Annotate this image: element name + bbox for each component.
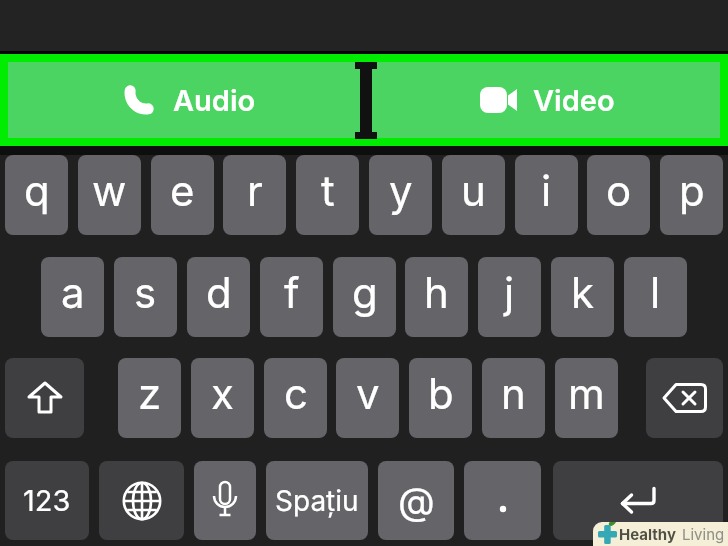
staticText: d bbox=[206, 267, 232, 318]
staticText: x bbox=[211, 368, 234, 419]
staticText: y bbox=[389, 165, 413, 216]
button[interactable]: d bbox=[187, 257, 250, 337]
button[interactable]: m bbox=[555, 358, 618, 438]
button[interactable]: b bbox=[409, 358, 472, 438]
button[interactable]: t bbox=[296, 155, 359, 235]
staticText: m bbox=[568, 368, 605, 419]
staticText: v bbox=[356, 368, 380, 419]
staticText: Spațiu bbox=[275, 484, 359, 518]
staticText: i bbox=[541, 165, 552, 216]
button[interactable]: Video bbox=[368, 62, 720, 138]
button[interactable]: u bbox=[442, 155, 505, 235]
button[interactable]: v bbox=[336, 358, 399, 438]
button[interactable]: w bbox=[78, 155, 141, 235]
staticText: q bbox=[24, 165, 50, 216]
button[interactable] bbox=[464, 461, 541, 540]
staticText: g bbox=[352, 267, 378, 318]
button[interactable]: 123 bbox=[5, 461, 89, 540]
button[interactable]: q bbox=[5, 155, 68, 235]
staticText: t bbox=[321, 165, 335, 216]
button[interactable]: Audio bbox=[8, 62, 360, 138]
staticText: f bbox=[284, 267, 300, 318]
button[interactable]: o bbox=[587, 155, 650, 235]
button[interactable]: Healthy bbox=[593, 522, 728, 546]
button[interactable]: a bbox=[41, 257, 104, 337]
button[interactable]: @ bbox=[378, 461, 454, 540]
staticText: z bbox=[138, 368, 162, 419]
staticText: l bbox=[650, 267, 661, 318]
button[interactable]: j bbox=[478, 257, 541, 337]
staticText: j bbox=[504, 267, 515, 318]
button[interactable] bbox=[99, 461, 184, 540]
button[interactable]: z bbox=[118, 358, 181, 438]
staticText: p bbox=[679, 165, 705, 216]
staticText: h bbox=[424, 267, 449, 318]
staticText: @ bbox=[398, 478, 435, 524]
button[interactable]: g bbox=[333, 257, 396, 337]
button[interactable] bbox=[194, 461, 256, 540]
staticText: r bbox=[247, 165, 263, 216]
button[interactable]: n bbox=[482, 358, 545, 438]
staticText: Audio bbox=[173, 83, 256, 118]
staticText: 123 bbox=[23, 483, 71, 518]
staticText: o bbox=[606, 165, 632, 216]
button[interactable]: r bbox=[223, 155, 286, 235]
staticText: u bbox=[461, 165, 486, 216]
button[interactable]: e bbox=[151, 155, 214, 235]
staticText: Video bbox=[533, 83, 615, 118]
staticText: e bbox=[170, 165, 195, 216]
button[interactable]: i bbox=[515, 155, 578, 235]
staticText: a bbox=[61, 267, 85, 318]
staticText: n bbox=[501, 368, 526, 419]
button[interactable]: y bbox=[369, 155, 432, 235]
button[interactable]: f bbox=[260, 257, 323, 337]
button[interactable] bbox=[5, 358, 84, 438]
staticText: Living bbox=[682, 525, 725, 543]
button[interactable]: k bbox=[551, 257, 614, 337]
staticText: s bbox=[134, 267, 157, 318]
staticText: k bbox=[571, 267, 595, 318]
button[interactable]: c bbox=[264, 358, 327, 438]
staticText: Healthy bbox=[619, 525, 676, 543]
button[interactable]: s bbox=[114, 257, 177, 337]
button[interactable]: x bbox=[191, 358, 254, 438]
button[interactable]: h bbox=[405, 257, 468, 337]
staticText: w bbox=[92, 165, 127, 216]
button[interactable]: p bbox=[660, 155, 723, 235]
button[interactable] bbox=[646, 358, 723, 438]
button[interactable]: Spațiu bbox=[266, 461, 368, 540]
button[interactable]: l bbox=[624, 257, 687, 337]
button[interactable] bbox=[553, 461, 723, 540]
staticText: c bbox=[284, 368, 308, 419]
staticText: b bbox=[428, 368, 454, 419]
